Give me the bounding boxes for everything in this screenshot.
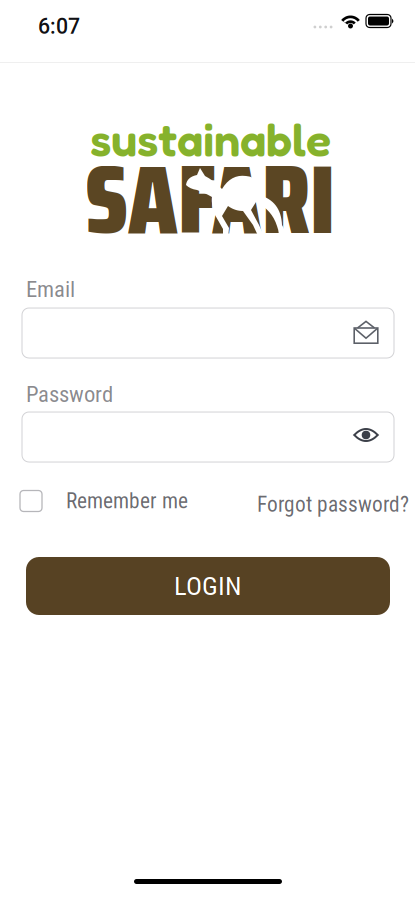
button[interactable]: Password xyxy=(22,412,394,462)
staticText: Email xyxy=(26,276,75,303)
staticText: Forgot password? xyxy=(257,492,409,517)
staticText: Remember me xyxy=(66,488,188,513)
staticText: LOGIN xyxy=(174,570,242,602)
button[interactable]: LOGIN xyxy=(26,557,390,615)
staticText: 6:07 xyxy=(38,14,80,39)
staticText: SAFARI xyxy=(85,124,335,275)
staticText: Password xyxy=(26,381,113,408)
staticText: sustainable xyxy=(90,111,331,167)
button[interactable]: Remember me xyxy=(20,489,188,513)
button[interactable]: Forgot password? xyxy=(257,492,407,514)
button[interactable]: Email xyxy=(22,308,394,358)
